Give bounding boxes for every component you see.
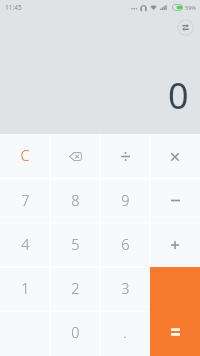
other: Minus [171,196,180,205]
button[interactable]: Minus [150,179,200,224]
staticText: C [20,145,30,165]
button[interactable]: Divide [100,134,150,179]
button[interactable] [150,312,200,356]
button[interactable]: Multiply [150,134,200,179]
staticText: 59% [185,4,196,11]
staticText: 0 [168,71,189,120]
button[interactable]: 8 [50,179,100,224]
button[interactable]: 4 [0,224,50,268]
button[interactable]: 0 [50,312,100,356]
button[interactable]: 7 [0,179,50,224]
other: Multiply [171,153,179,161]
button[interactable]: 3 [100,268,150,312]
staticText: 6 [121,234,130,254]
button[interactable]: Plus [150,224,200,268]
staticText: 1 [21,278,30,298]
button[interactable]: 6 [100,224,150,268]
staticText: 5 [71,234,80,254]
other: Plus [171,241,179,249]
button[interactable]: Equals [150,267,200,356]
button[interactable]: 1 [0,268,50,312]
staticText: . [123,322,127,342]
other: Divide [121,152,130,161]
staticText: 9 [121,190,130,210]
staticText: 7 [21,190,30,210]
button[interactable]: 2 [50,268,100,312]
staticText: 2 [71,278,80,298]
staticText: 0 [71,322,80,342]
button[interactable]: Backspace [50,134,100,179]
button[interactable]: 5 [50,224,100,268]
button[interactable]: C [0,134,50,179]
other: Backspace [69,152,82,161]
button[interactable]: 9 [100,179,150,224]
staticText: 8 [71,190,80,210]
staticText: 4 [21,234,30,254]
staticText: 3 [121,278,130,298]
staticText: 11:45 [5,3,22,12]
button[interactable]: Unit converter [177,19,194,36]
